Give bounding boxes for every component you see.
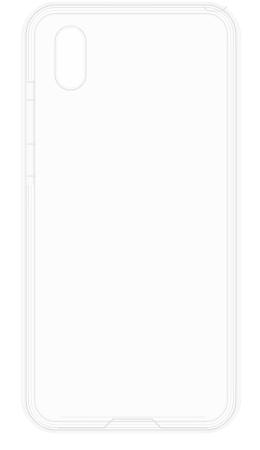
button[interactable]: Transparent phone case product photo <box>0 0 260 450</box>
